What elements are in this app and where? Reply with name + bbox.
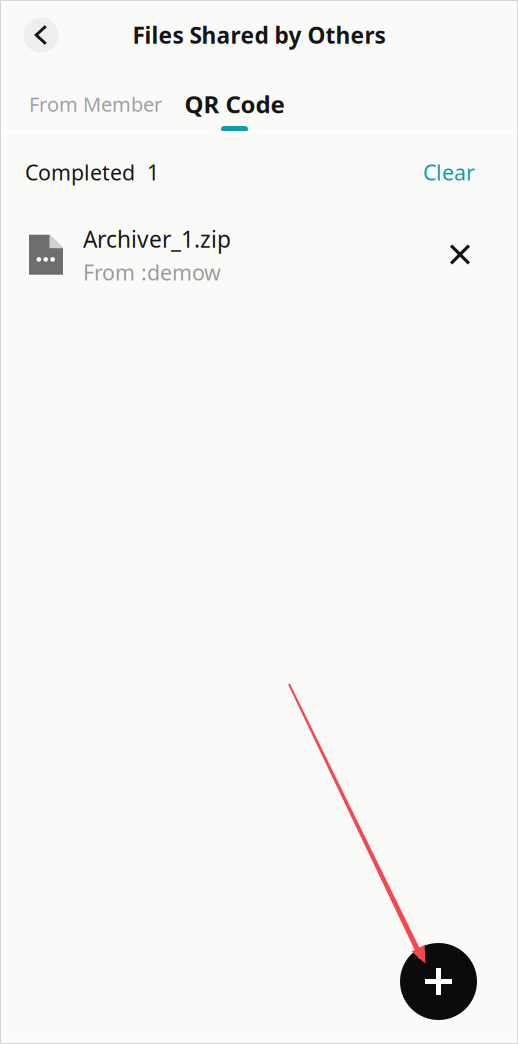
button[interactable]: Remove Archiver_1.zip	[428, 216, 492, 288]
staticText: From Member	[29, 91, 162, 117]
staticText: Completed 1	[25, 158, 159, 186]
button[interactable]: QR Code	[172, 85, 297, 132]
staticText: Files Shared by Others	[132, 20, 385, 50]
staticText: Archiver_1.zip	[83, 224, 231, 254]
staticText: Clear	[423, 158, 475, 186]
staticText: QR Code	[184, 88, 284, 120]
button[interactable]: Archiver_1.zip	[0, 216, 428, 288]
staticText: From :demow	[83, 258, 221, 286]
button[interactable]: Clear	[423, 158, 475, 186]
button[interactable]: From Member	[19, 85, 172, 123]
button[interactable]: Back	[19, 13, 63, 57]
button[interactable]: Add file	[400, 943, 477, 1020]
